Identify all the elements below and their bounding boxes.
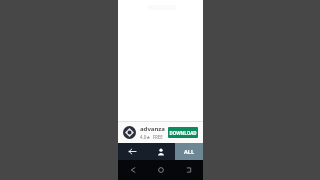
button[interactable]: Account [147, 143, 175, 160]
staticText: 4.0★ FREE [140, 134, 163, 140]
button[interactable]: advanza [118, 122, 203, 143]
button[interactable]: DOWNLOAD [168, 127, 198, 138]
button[interactable]: Back [118, 143, 147, 160]
button[interactable]: Back [118, 160, 147, 180]
button[interactable]: ALL [175, 143, 203, 160]
staticText: advanza [140, 125, 165, 133]
button[interactable]: Recent apps [175, 160, 203, 180]
staticText: DOWNLOAD [169, 130, 197, 136]
button[interactable]: Home [147, 160, 175, 180]
staticText: ALL [184, 148, 194, 155]
